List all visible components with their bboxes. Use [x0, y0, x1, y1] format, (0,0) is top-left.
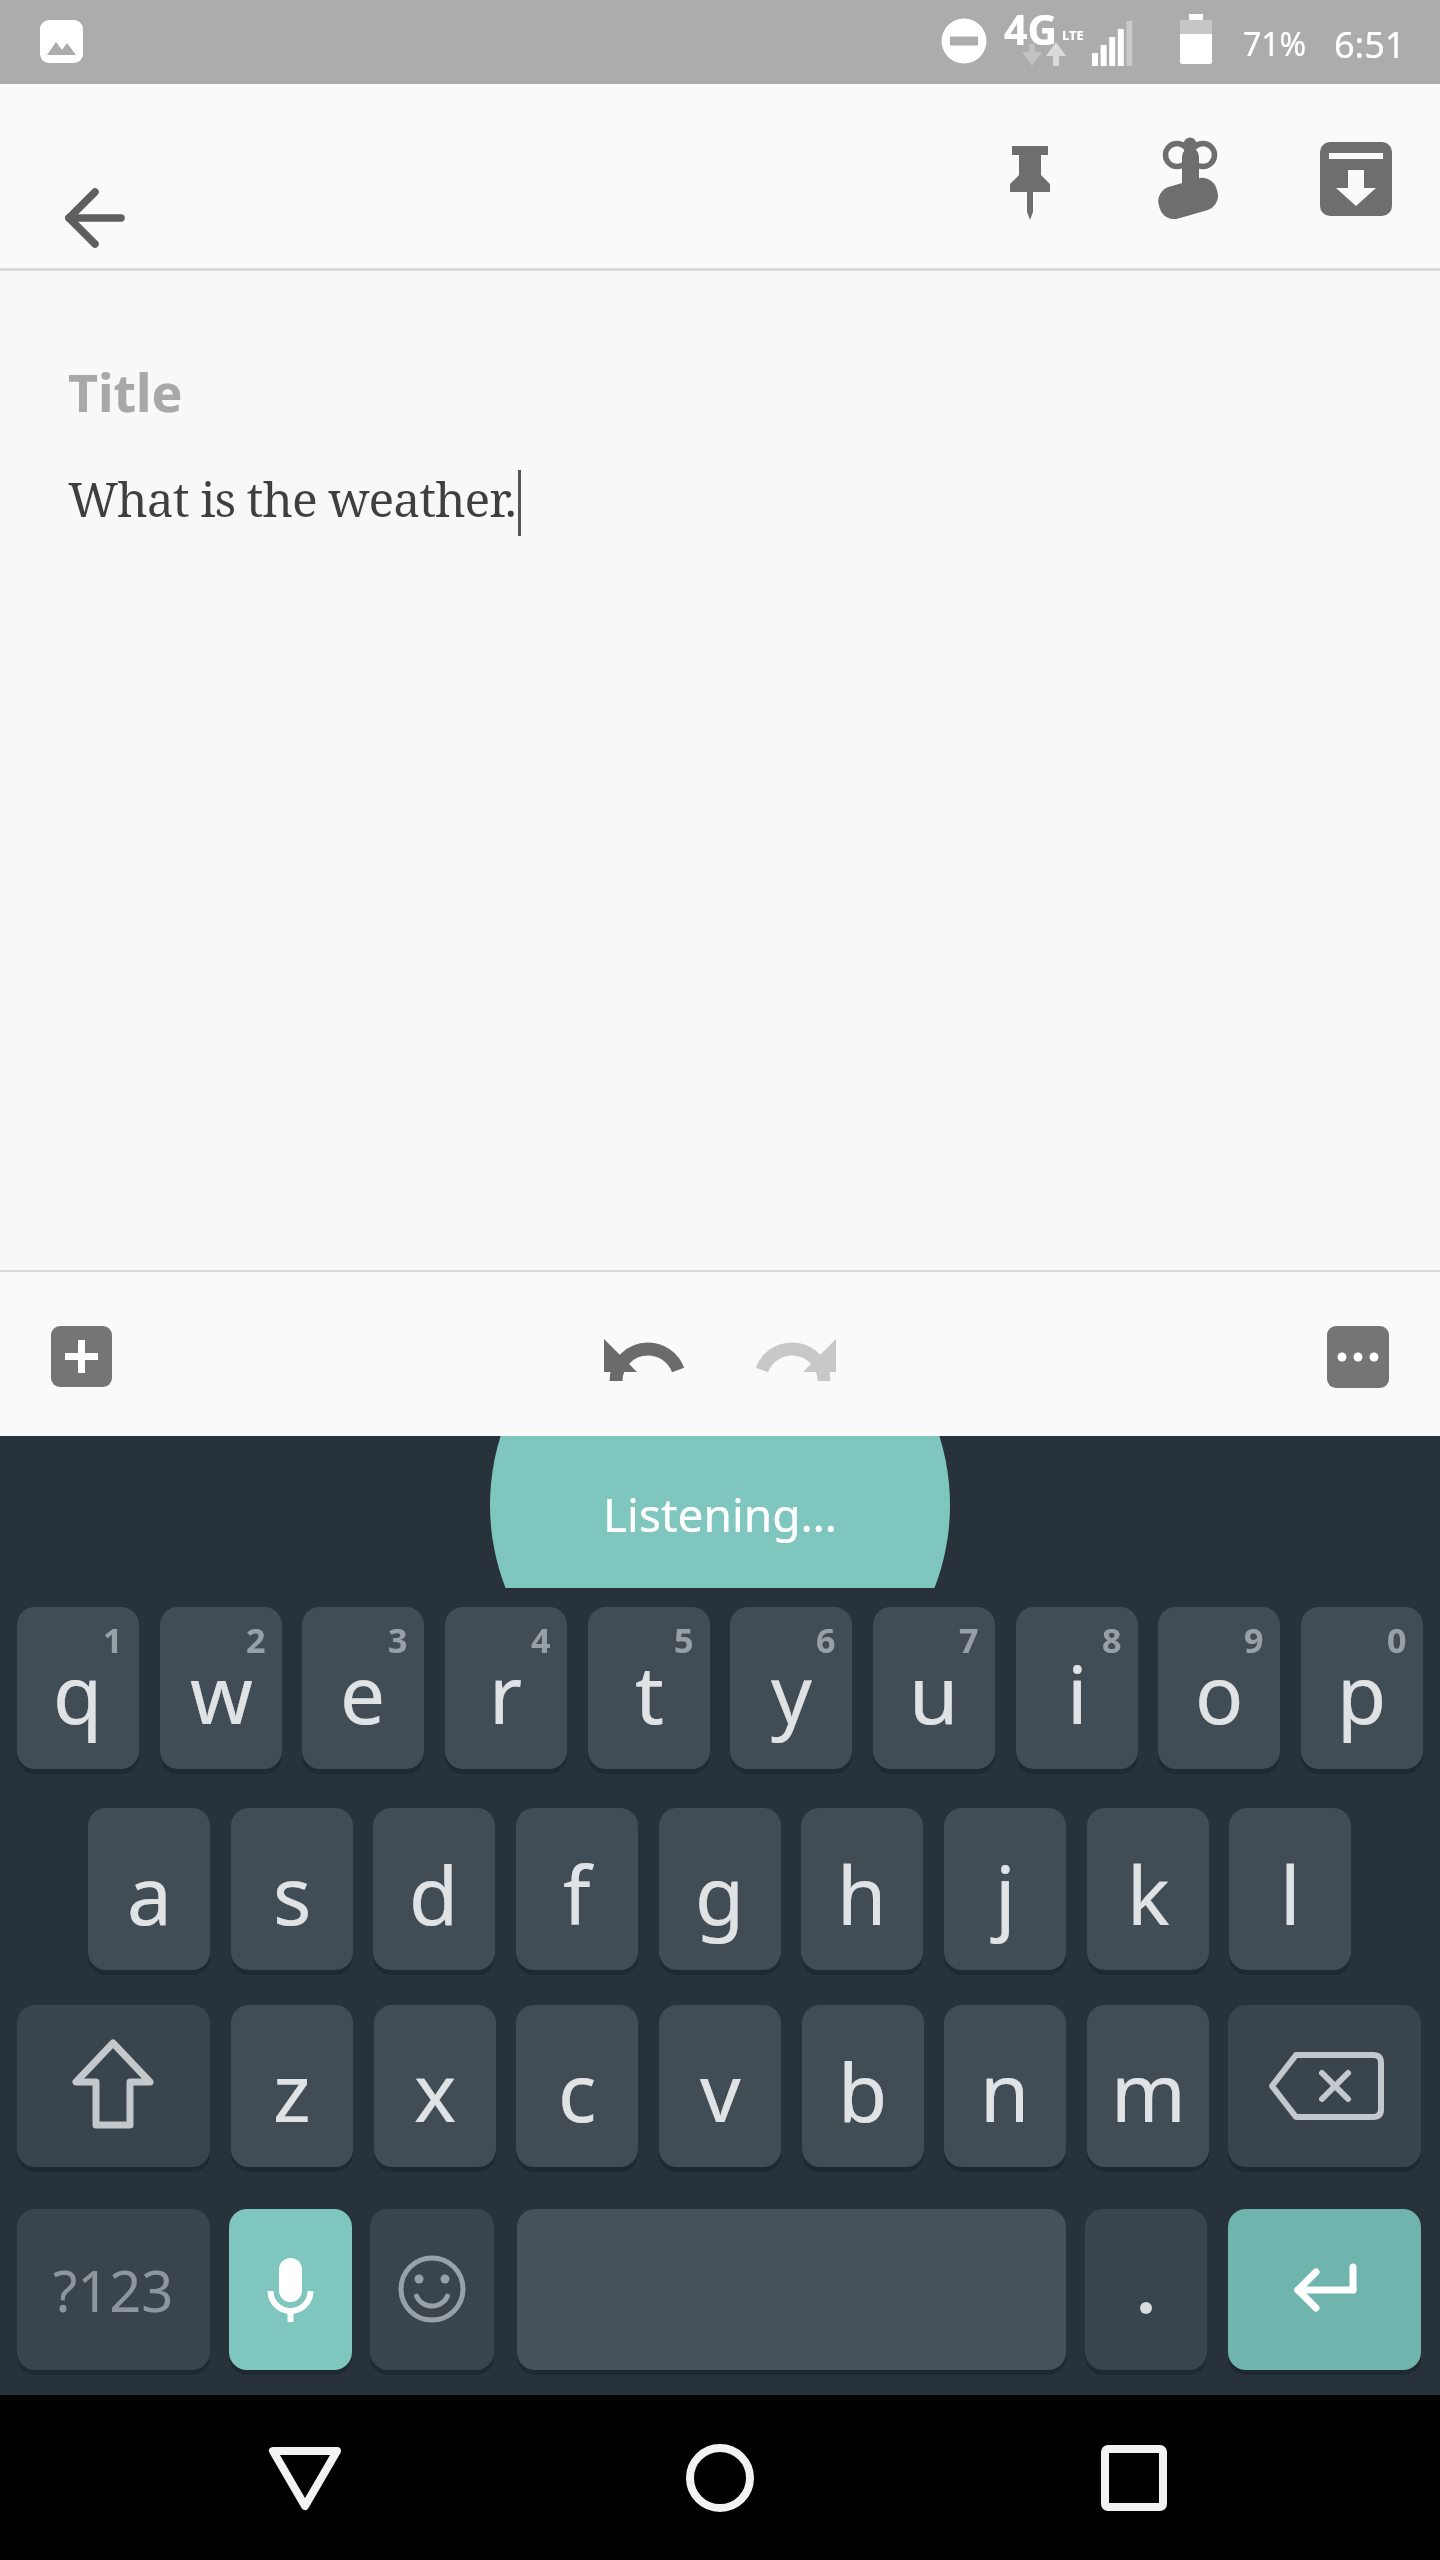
staticText: 5	[674, 1617, 694, 1663]
button[interactable]: o	[1158, 1607, 1280, 1769]
button[interactable]: d	[373, 1808, 495, 1970]
staticText: e	[340, 1638, 386, 1747]
staticText: Listening…	[603, 1483, 837, 1546]
button[interactable]	[1085, 2209, 1207, 2370]
staticText: x	[414, 2036, 457, 2145]
staticText: l	[1280, 1839, 1301, 1948]
staticText: d	[409, 1839, 459, 1948]
button[interactable]	[978, 128, 1082, 232]
button[interactable]: x	[374, 2005, 496, 2167]
button[interactable]: j	[944, 1808, 1066, 1970]
button[interactable]: y	[730, 1607, 852, 1769]
staticText: m	[1111, 2036, 1186, 2145]
button[interactable]	[245, 2418, 365, 2538]
staticText: 9	[1244, 1617, 1264, 1663]
staticText: 8	[1102, 1617, 1122, 1663]
staticText: z	[273, 2036, 311, 2145]
button[interactable]: r	[445, 1607, 567, 1769]
button[interactable]: w	[160, 1607, 282, 1769]
staticText: r	[489, 1638, 523, 1747]
staticText: p	[1337, 1638, 1387, 1747]
staticText: h	[837, 1839, 887, 1948]
button[interactable]: f	[516, 1808, 638, 1970]
button[interactable]: t	[588, 1607, 710, 1769]
button[interactable]: i	[1016, 1607, 1138, 1769]
button[interactable]	[43, 125, 147, 229]
button[interactable]: z	[231, 2005, 353, 2167]
button[interactable]	[1228, 2209, 1421, 2370]
staticText: 4	[531, 1617, 551, 1663]
button[interactable]: v	[659, 2005, 781, 2167]
staticText: s	[273, 1839, 312, 1948]
staticText: g	[695, 1839, 745, 1948]
staticText: j	[995, 1839, 1016, 1948]
button[interactable]	[748, 1304, 852, 1408]
button[interactable]	[370, 2209, 494, 2370]
staticText: 7	[959, 1617, 979, 1663]
staticText: o	[1195, 1638, 1244, 1747]
button[interactable]	[1074, 2418, 1194, 2538]
button[interactable]	[1228, 2005, 1421, 2167]
staticText: 3	[388, 1617, 408, 1663]
button[interactable]: l	[1229, 1808, 1351, 1970]
staticText: w	[190, 1638, 253, 1747]
staticText: ?123	[53, 2252, 174, 2328]
staticText: 71%	[1243, 22, 1307, 66]
button[interactable]: s	[231, 1808, 353, 1970]
staticText: y	[771, 1638, 812, 1747]
button[interactable]	[588, 1304, 692, 1408]
button[interactable]: What is the weather.	[68, 466, 519, 532]
staticText: a	[127, 1839, 172, 1948]
button[interactable]	[1327, 1326, 1389, 1388]
staticText: c	[558, 2036, 597, 2145]
staticText: 6	[816, 1617, 836, 1663]
button[interactable]	[1304, 128, 1408, 232]
staticText: LTE	[1062, 26, 1084, 44]
staticText: 1	[103, 1617, 123, 1663]
staticText: 4G	[1004, 1, 1058, 57]
button[interactable]: m	[1087, 2005, 1209, 2167]
staticText: What is the weather.	[68, 466, 516, 531]
button[interactable]: ?123	[17, 2209, 210, 2370]
staticText: n	[980, 2036, 1030, 2145]
button[interactable]: Title	[68, 356, 668, 428]
button[interactable]	[17, 2005, 210, 2167]
button[interactable]: h	[801, 1808, 923, 1970]
staticText: k	[1127, 1839, 1170, 1948]
button[interactable]: g	[659, 1808, 781, 1970]
button[interactable]	[660, 2418, 780, 2538]
staticText: Title	[68, 356, 183, 427]
button[interactable]: u	[873, 1607, 995, 1769]
staticText: 6:51	[1334, 20, 1406, 69]
button[interactable]: k	[1087, 1808, 1209, 1970]
button[interactable]: p	[1301, 1607, 1423, 1769]
staticText: t	[635, 1638, 664, 1747]
button[interactable]: c	[516, 2005, 638, 2167]
staticText: 0	[1387, 1617, 1407, 1663]
button[interactable]	[1138, 128, 1242, 232]
staticText: v	[700, 2036, 741, 2145]
button[interactable]	[51, 1326, 112, 1387]
button[interactable]: q	[17, 1607, 139, 1769]
button[interactable]: b	[802, 2005, 924, 2167]
staticText: b	[838, 2036, 888, 2145]
button[interactable]: n	[944, 2005, 1066, 2167]
button[interactable]: e	[302, 1607, 424, 1769]
staticText: i	[1067, 1638, 1088, 1747]
button[interactable]	[229, 2209, 352, 2370]
staticText: f	[563, 1839, 591, 1948]
button[interactable]: a	[88, 1808, 210, 1970]
staticText: q	[53, 1638, 103, 1747]
staticText: u	[909, 1638, 959, 1747]
staticText: 2	[246, 1617, 266, 1663]
